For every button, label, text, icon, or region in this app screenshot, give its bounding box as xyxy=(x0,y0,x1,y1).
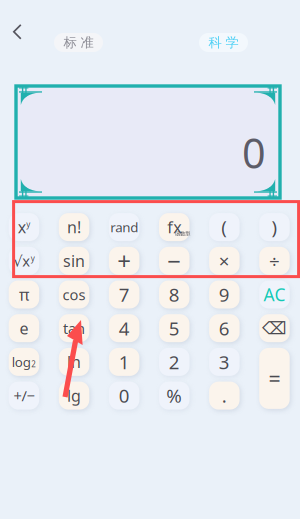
button[interactable]: 科 学 xyxy=(199,33,248,52)
staticText: 标 准 xyxy=(63,34,93,51)
staticText: 2 xyxy=(31,359,36,369)
button[interactable]: % xyxy=(159,382,189,410)
button[interactable]: 2 xyxy=(159,348,189,376)
button[interactable]: Back xyxy=(5,17,33,48)
staticText: log xyxy=(12,353,31,371)
button[interactable]: ) xyxy=(259,213,290,241)
staticText: sin xyxy=(63,250,85,271)
staticText: 4 xyxy=(119,316,130,341)
staticText: . xyxy=(222,383,227,408)
staticText: − xyxy=(167,245,181,277)
staticText: 6 xyxy=(219,316,230,341)
button[interactable]: 1 xyxy=(109,348,139,376)
button[interactable]: log xyxy=(9,348,39,376)
staticText: 1 xyxy=(119,349,130,374)
staticText: 函数型 xyxy=(175,230,190,237)
button[interactable]: AC xyxy=(259,280,290,308)
button[interactable]: sin xyxy=(59,247,89,275)
staticText: tan xyxy=(63,318,85,338)
button[interactable]: ÷ xyxy=(259,247,290,275)
staticText: 9 xyxy=(219,282,230,307)
button[interactable]: 标 准 xyxy=(54,33,103,52)
button[interactable]: Delete xyxy=(259,314,290,342)
staticText: ) xyxy=(271,215,277,239)
button[interactable]: x xyxy=(9,213,39,241)
staticText: ln xyxy=(67,351,81,372)
staticText: ⌫ xyxy=(262,318,287,338)
button[interactable]: − xyxy=(159,247,189,275)
button[interactable]: √x xyxy=(9,247,39,275)
staticText: e xyxy=(19,318,28,339)
staticText: 0 xyxy=(242,125,266,180)
button[interactable]: cos xyxy=(59,280,89,308)
staticText: 2 xyxy=(169,349,180,374)
staticText: AC xyxy=(263,283,285,306)
staticText: fx xyxy=(167,216,181,238)
button[interactable]: lg xyxy=(59,382,89,410)
button[interactable]: ( xyxy=(209,213,240,241)
button[interactable]: × xyxy=(209,247,240,275)
button[interactable]: + xyxy=(109,247,139,275)
staticText: x xyxy=(18,216,26,238)
staticText: 0 xyxy=(119,383,130,408)
staticText: + xyxy=(117,245,131,277)
button[interactable]: 8 xyxy=(159,280,189,308)
button[interactable]: rand xyxy=(109,213,139,241)
button[interactable]: 9 xyxy=(209,280,240,308)
button[interactable]: n! xyxy=(59,213,89,241)
staticText: 7 xyxy=(119,282,130,307)
staticText: = xyxy=(268,364,280,392)
staticText: cos xyxy=(62,285,85,304)
button[interactable]: 7 xyxy=(109,280,139,308)
button[interactable]: ln xyxy=(59,348,89,376)
button[interactable]: 5 xyxy=(159,314,189,342)
staticText: y xyxy=(31,253,35,264)
staticText: 科 学 xyxy=(208,34,238,51)
button[interactable]: π xyxy=(9,280,39,308)
button[interactable]: 6 xyxy=(209,314,240,342)
staticText: % xyxy=(166,383,182,408)
staticText: ( xyxy=(221,215,227,239)
button[interactable]: +/− xyxy=(9,382,39,410)
staticText: 5 xyxy=(169,316,180,341)
button[interactable]: 0 xyxy=(109,382,139,410)
button[interactable]: 4 xyxy=(109,314,139,342)
staticText: rand xyxy=(110,218,138,236)
button[interactable]: 3 xyxy=(209,348,240,376)
staticText: lg xyxy=(67,385,81,406)
staticText: 3 xyxy=(219,349,230,374)
staticText: 8 xyxy=(169,282,180,307)
staticText: y xyxy=(26,219,30,230)
staticText: n! xyxy=(67,216,81,238)
staticText: × xyxy=(219,248,230,273)
staticText: ÷ xyxy=(269,248,280,273)
button[interactable]: . xyxy=(209,382,240,410)
button[interactable]: fx xyxy=(159,213,189,241)
button[interactable]: e xyxy=(9,314,39,342)
button[interactable]: = xyxy=(259,348,290,409)
button[interactable]: tan xyxy=(59,314,89,342)
staticText: +/− xyxy=(13,386,34,405)
staticText: √x xyxy=(13,251,30,271)
staticText: π xyxy=(19,284,29,305)
